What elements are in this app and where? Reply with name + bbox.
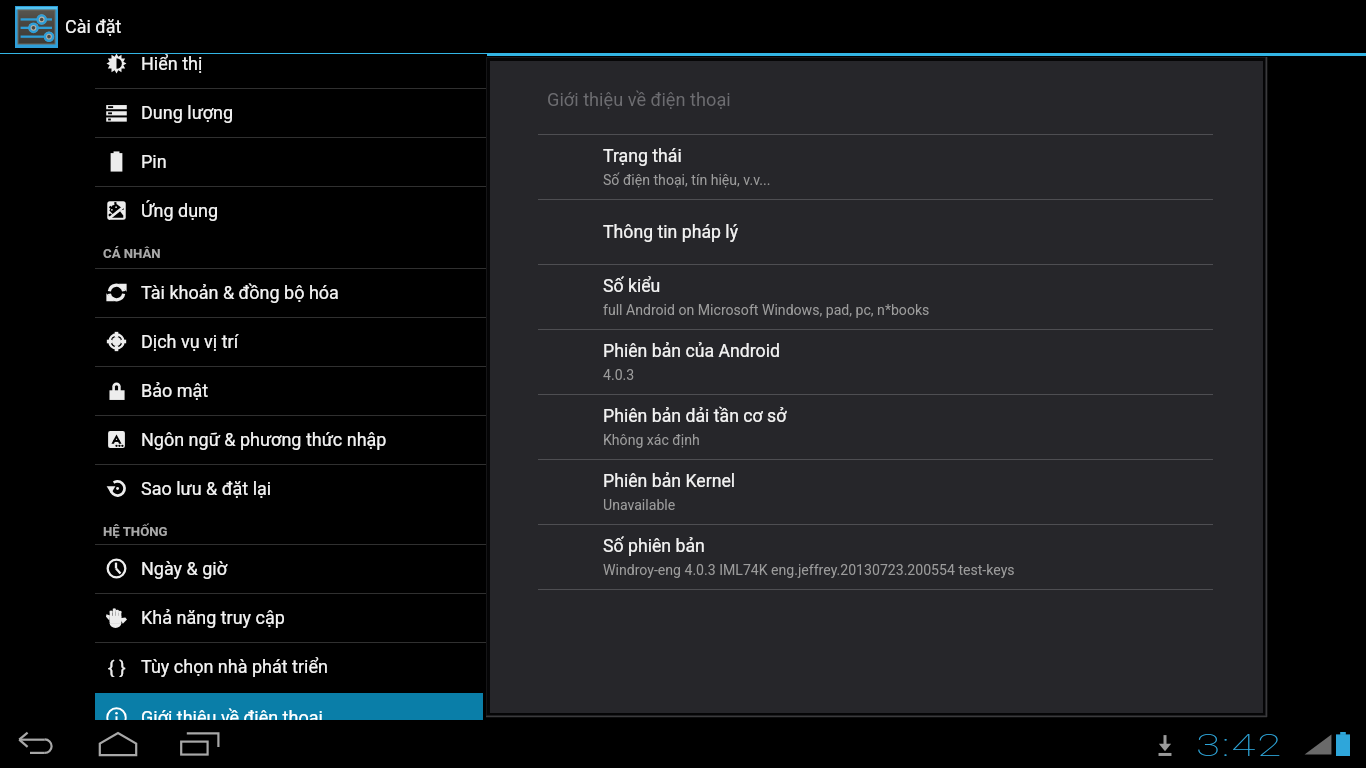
button[interactable]: Bảo mật (0, 366, 487, 415)
button[interactable]: Tài khoản & đồng bộ hóa (0, 268, 487, 317)
staticText: Phiên bản dải tần cơ sở (603, 406, 787, 427)
staticText: Dịch vụ vị trí (141, 331, 239, 352)
staticText: Trạng thái (603, 146, 682, 167)
button[interactable]: Back (6, 720, 70, 768)
staticText: 3:42 (1196, 727, 1284, 763)
staticText: Khả năng truy cập (141, 607, 285, 628)
staticText: { } (108, 656, 126, 677)
staticText: Cài đặt (65, 16, 122, 37)
staticText: Windroy-eng 4.0.3 IML74K eng.jeffrey.201… (603, 562, 1015, 579)
staticText: Unavailable (603, 497, 676, 514)
button[interactable]: Home (86, 720, 150, 768)
button[interactable]: Sao lưu & đặt lại (0, 464, 487, 513)
staticText: Dung lượng (141, 102, 234, 123)
button[interactable]: Hiển thị (0, 54, 487, 88)
button[interactable]: Phiên bản Kernel (490, 460, 1263, 524)
button[interactable]: { } (0, 642, 487, 691)
button[interactable]: Recents (168, 720, 232, 768)
button[interactable]: Ngày & giờ (0, 544, 487, 593)
button[interactable]: Dịch vụ vị trí (0, 317, 487, 366)
staticText: Tài khoản & đồng bộ hóa (141, 282, 339, 303)
button[interactable]: Trạng thái (490, 135, 1263, 199)
staticText: HỆ THỐNG (103, 524, 168, 539)
staticText: 4.0.3 (603, 367, 635, 384)
staticText: Phiên bản của Android (603, 341, 780, 362)
staticText: full Android on Microsoft Windows, pad, … (603, 302, 930, 319)
staticText: Sao lưu & đặt lại (141, 478, 272, 499)
button[interactable]: Phiên bản của Android (490, 330, 1263, 394)
staticText: Ứng dụng (141, 200, 219, 221)
staticText: Giới thiệu về điện thoại (141, 707, 323, 720)
button[interactable]: Settings (15, 6, 58, 48)
staticText: Bảo mật (141, 380, 209, 401)
button[interactable]: Ứng dụng (0, 186, 487, 235)
button[interactable]: Giới thiệu về điện thoại (95, 693, 483, 720)
staticText: Tùy chọn nhà phát triển (141, 656, 328, 677)
staticText: Số điện thoại, tín hiệu, v.v... (603, 172, 771, 189)
staticText: Ngày & giờ (141, 558, 228, 579)
staticText: Phiên bản Kernel (603, 471, 736, 492)
button[interactable]: Ngôn ngữ & phương thức nhập (0, 415, 487, 464)
staticText: CÁ NHÂN (103, 246, 161, 261)
button[interactable]: Số phiên bản (490, 525, 1263, 589)
staticText: Thông tin pháp lý (603, 222, 738, 243)
button[interactable]: Khả năng truy cập (0, 593, 487, 642)
button[interactable]: Thông tin pháp lý (490, 200, 1263, 264)
staticText: Hiển thị (141, 54, 203, 74)
staticText: Giới thiệu về điện thoại (547, 89, 731, 110)
button[interactable]: Dung lượng (0, 88, 487, 137)
staticText: Không xác định (603, 432, 700, 449)
staticText: Số phiên bản (603, 536, 705, 557)
staticText: Số kiểu (603, 276, 661, 297)
staticText: Pin (141, 151, 167, 172)
button[interactable]: Pin (0, 137, 487, 186)
button[interactable]: Số kiểu (490, 265, 1263, 329)
button[interactable]: Phiên bản dải tần cơ sở (490, 395, 1263, 459)
staticText: Ngôn ngữ & phương thức nhập (141, 429, 387, 450)
